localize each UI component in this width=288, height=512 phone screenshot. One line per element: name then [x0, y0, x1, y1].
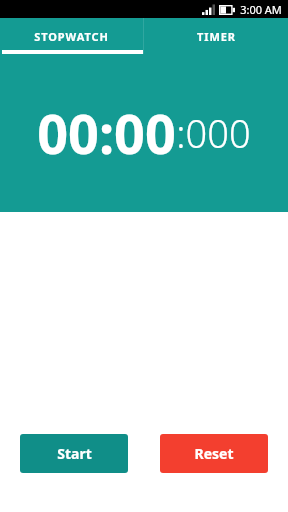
- staticText: :000: [176, 107, 251, 159]
- staticText: 00:00: [37, 96, 176, 170]
- button[interactable]: TIMER: [144, 18, 288, 54]
- button[interactable]: Reset: [160, 434, 268, 473]
- button[interactable]: STOPWATCH: [0, 18, 143, 54]
- other: Cellular signal strength: [202, 4, 215, 15]
- staticText: STOPWATCH: [34, 29, 109, 44]
- button[interactable]: Start: [20, 434, 128, 473]
- other: Battery half charged: [219, 5, 235, 15]
- staticText: Reset: [194, 444, 234, 463]
- staticText: 3:00 AM: [240, 2, 282, 17]
- staticText: TIMER: [197, 29, 236, 44]
- staticText: Start: [57, 444, 92, 463]
